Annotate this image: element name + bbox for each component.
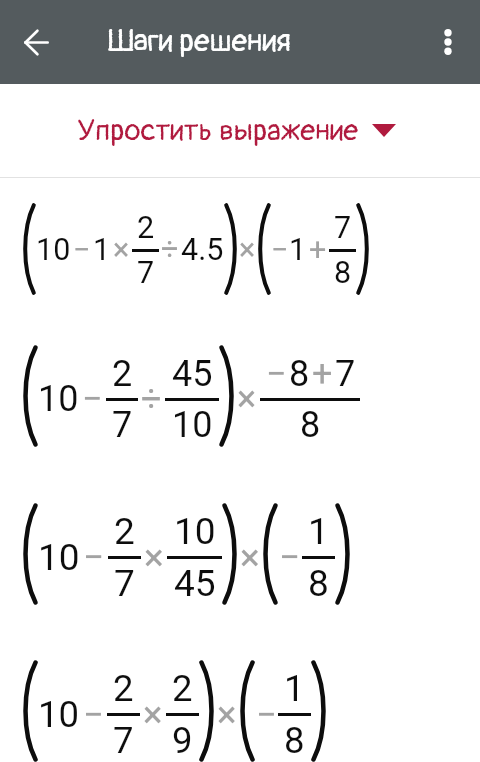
staticText: + [309,232,327,268]
staticText: 10 [38,693,80,736]
staticText: 10 [38,378,79,420]
staticText: 1 [93,232,111,268]
button[interactable]: Упростить выражение [0,84,480,177]
staticText: − [73,232,91,268]
staticText: 7 [137,255,155,291]
staticText: × [113,232,130,268]
staticText: 2 [113,667,134,710]
staticText: − [83,693,104,736]
staticText: × [217,693,237,736]
staticText: − [82,378,103,420]
staticText: × [239,232,256,268]
staticText: 7 [334,210,352,246]
staticText: Шаги решения [108,22,291,61]
staticText: 8 [308,562,329,605]
staticText: 2 [137,210,155,246]
staticText: 2 [112,353,133,395]
button[interactable]: Back [6,12,66,72]
staticText: 10 [36,232,71,268]
staticText: × [237,378,257,420]
staticText: 7 [335,353,356,395]
staticText: 1 [308,510,329,553]
staticText: × [143,693,163,736]
staticText: 7 [112,404,133,446]
staticText: 4.5 [181,232,224,268]
staticText: ÷ [141,378,162,420]
staticText: 9 [172,719,193,762]
staticText: − [279,536,301,579]
staticText: 8 [284,719,305,762]
staticText: 8 [289,353,310,395]
staticText: − [83,536,105,579]
staticText: 10 [38,536,80,579]
staticText: 45 [174,562,216,605]
staticText: ÷ [161,232,179,268]
staticText: − [271,232,289,268]
staticText: × [240,536,260,579]
staticText: 1 [284,667,305,710]
staticText: 2 [114,510,135,553]
staticText: 7 [113,719,134,762]
staticText: Упростить выражение [77,112,359,149]
button[interactable]: More options [424,18,472,66]
staticText: + [312,353,333,395]
staticText: 8 [334,255,352,291]
staticText: − [256,693,277,736]
staticText: × [144,536,164,579]
staticText: 2 [172,667,193,710]
staticText: 10 [172,404,213,446]
staticText: 7 [114,562,135,605]
staticText: 10 [174,510,216,553]
staticText: 45 [172,353,213,395]
staticText: − [266,353,287,395]
staticText: 8 [300,404,321,446]
staticText: 1 [289,232,307,268]
